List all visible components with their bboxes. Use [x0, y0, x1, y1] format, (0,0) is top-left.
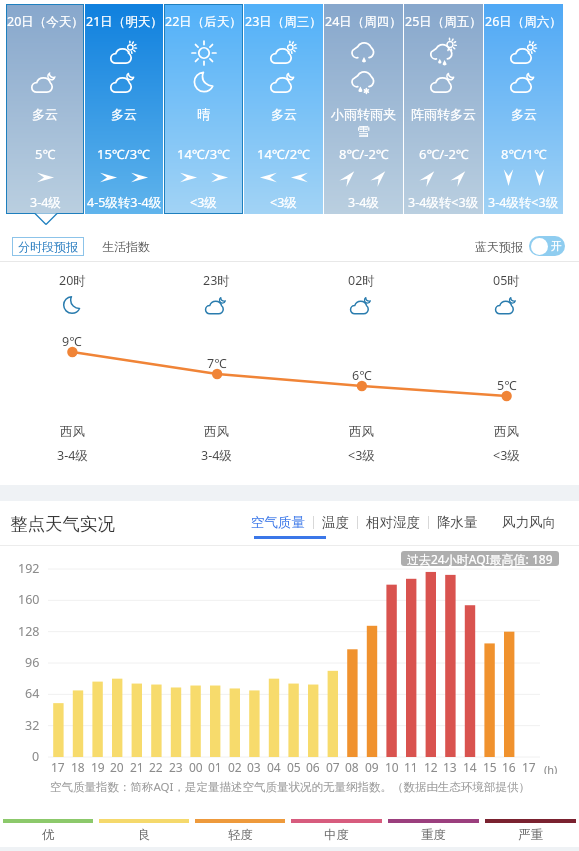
staticText: 小雨转雨夹雪	[326, 106, 401, 140]
staticText: 空气质量	[251, 514, 305, 531]
staticText: 多云	[271, 106, 297, 122]
staticText: <3级	[270, 194, 297, 211]
staticText: 24日（周四）	[325, 13, 402, 30]
button[interactable]: 优	[0, 823, 96, 847]
button[interactable]: 中度	[288, 823, 385, 847]
staticText: 22日（后天）	[165, 13, 242, 30]
staticText: 西风	[204, 424, 229, 440]
staticText: 17	[51, 759, 65, 774]
staticText: 20日（今天）	[7, 13, 84, 30]
staticText: 0	[32, 748, 40, 765]
staticText: 分时段预报	[18, 239, 78, 254]
button[interactable]: 轻度	[192, 823, 288, 847]
staticText: 5℃	[497, 377, 517, 394]
staticText: (h)	[544, 762, 558, 774]
staticText: 3-4级	[30, 194, 61, 211]
button[interactable]: 22日（后天）	[164, 4, 243, 214]
staticText: 14℃/2℃	[257, 145, 311, 163]
staticText: 过去24小时AQI最高值: 189	[407, 551, 553, 566]
staticText: 14℃/3℃	[177, 145, 231, 163]
staticText: 生活指数	[102, 239, 150, 254]
staticText: 空气质量指数：简称AQI，是定量描述空气质量状况的无量纲指数。（数据由生态环境部…	[50, 779, 530, 795]
staticText: 17	[522, 759, 536, 774]
button[interactable]: 严重	[482, 823, 579, 847]
button[interactable]: 温度	[314, 514, 357, 531]
staticText: 32	[25, 717, 40, 734]
staticText: 8℃/-2℃	[339, 145, 389, 163]
staticText: 05	[287, 759, 301, 774]
staticText: 3-4级	[201, 447, 232, 464]
staticText: 14	[463, 759, 477, 774]
staticText: 20	[110, 759, 124, 774]
staticText: 蓝天预报	[475, 239, 523, 254]
staticText: 128	[18, 623, 40, 640]
staticText: 15	[483, 759, 497, 774]
staticText: 中度	[324, 827, 349, 843]
staticText: 12	[424, 759, 438, 774]
button[interactable]: 生活指数	[98, 236, 154, 257]
button[interactable]: 重度	[385, 823, 482, 847]
button[interactable]: 良	[96, 823, 192, 847]
staticText: 00	[189, 759, 203, 774]
staticText: 02时	[348, 272, 375, 289]
staticText: 07	[326, 759, 340, 774]
button[interactable]: 02时	[289, 262, 434, 485]
staticText: <3级	[493, 447, 520, 464]
staticText: 温度	[322, 514, 349, 531]
button[interactable]: 24日（周四）	[324, 4, 403, 214]
button[interactable]: 23时	[144, 262, 289, 485]
staticText: 06	[306, 759, 320, 774]
staticText: 04	[267, 759, 281, 774]
button[interactable]: 05时	[434, 262, 579, 485]
staticText: 96	[25, 654, 40, 671]
staticText: 4-5级转3-4级	[87, 194, 162, 211]
staticText: 西风	[349, 424, 374, 440]
button[interactable]: 20时	[0, 262, 144, 485]
staticText: 整点天气实况	[10, 513, 115, 535]
staticText: 5℃	[35, 145, 56, 163]
staticText: 3-4级转<3级	[408, 194, 479, 211]
staticText: 9℃	[62, 333, 82, 350]
staticText: 22	[149, 759, 163, 774]
staticText: 多云	[32, 106, 58, 122]
staticText: 16	[502, 759, 516, 774]
staticText: 23时	[203, 272, 230, 289]
button[interactable]: 降水量	[429, 514, 486, 531]
staticText: 3-4级	[57, 447, 88, 464]
button[interactable]: 26日（周六）	[484, 4, 563, 214]
staticText: 多云	[511, 106, 537, 122]
staticText: 6℃/-2℃	[419, 145, 469, 163]
staticText: 23	[169, 759, 183, 774]
button[interactable]: 23日（周三）	[244, 4, 323, 214]
button[interactable]: 21日（明天）	[85, 4, 163, 214]
staticText: <3级	[190, 194, 217, 211]
staticText: 良	[138, 827, 151, 843]
staticText: 03	[247, 759, 261, 774]
staticText: 6℃	[352, 367, 372, 384]
button[interactable]: 20日（今天）	[6, 4, 84, 214]
staticText: 09	[365, 759, 379, 774]
staticText: 阵雨转多云	[411, 106, 476, 122]
staticText: 风力风向	[502, 514, 556, 531]
staticText: 7℃	[207, 355, 227, 372]
staticText: 64	[25, 685, 40, 702]
button[interactable]: 相对湿度	[358, 514, 428, 531]
staticText: 26日（周六）	[485, 13, 562, 30]
staticText: 3-4级转<3级	[488, 194, 559, 211]
staticText: 19	[91, 759, 105, 774]
staticText: 3-4级	[348, 194, 379, 211]
staticText: 西风	[494, 424, 519, 440]
staticText: 01	[208, 759, 222, 774]
button[interactable]: 蓝天预报 开关	[529, 236, 565, 256]
staticText: 西风	[60, 424, 85, 440]
button[interactable]: 空气质量	[243, 514, 313, 531]
staticText: <3级	[348, 447, 375, 464]
button[interactable]: 风力风向	[494, 514, 564, 531]
button[interactable]: 25日（周五）	[404, 4, 483, 214]
staticText: 25日（周五）	[405, 13, 482, 30]
staticText: 多云	[111, 106, 137, 122]
staticText: 重度	[421, 827, 446, 843]
staticText: 21日（明天）	[86, 13, 163, 30]
staticText: 160	[18, 591, 40, 608]
button[interactable]: 分时段预报	[12, 237, 84, 256]
